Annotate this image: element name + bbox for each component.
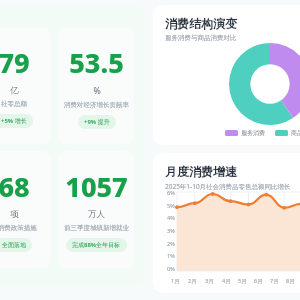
staticText: 服务消费与商品消费对比 <box>165 34 237 42</box>
staticText: 3% <box>167 227 175 234</box>
button[interactable]: 1057 <box>58 151 134 268</box>
staticText: 3月 <box>205 277 214 285</box>
staticText: 商品消费 <box>291 129 300 137</box>
staticText: 6月 <box>254 277 263 285</box>
button[interactable]: 53.5 <box>58 28 134 144</box>
staticText: 6% <box>167 189 175 196</box>
staticText: 2% <box>167 240 175 247</box>
staticText: 8月 <box>286 277 295 285</box>
staticText: 完成88%全年目标 <box>72 241 121 249</box>
staticText: 消费对经济增长贡献率 <box>64 101 129 109</box>
staticText: 4月 <box>222 277 231 285</box>
staticText: 项 <box>10 209 19 220</box>
staticText: 79 <box>0 44 30 81</box>
staticText: 社零总额 <box>1 100 27 108</box>
staticText: 53.5 <box>69 44 124 81</box>
staticText: 7月 <box>270 277 279 285</box>
button[interactable]: 服务消费 <box>225 129 265 137</box>
staticText: 亿 <box>10 85 19 96</box>
staticText: 全面落地 <box>2 241 26 249</box>
button[interactable]: 68 <box>0 151 51 268</box>
staticText: 68 <box>0 168 30 205</box>
staticText: 5月 <box>238 277 247 285</box>
staticText: 4% <box>167 214 175 221</box>
staticText: 2月 <box>188 277 197 285</box>
staticText: 1057 <box>65 168 128 205</box>
button[interactable]: 商品消费 <box>275 129 300 137</box>
staticText: +9% 提升 <box>84 118 110 126</box>
staticText: % <box>93 85 101 97</box>
staticText: 促消费政策措施 <box>0 224 37 232</box>
staticText: 1% <box>167 252 175 259</box>
staticText: 5% <box>167 202 175 209</box>
staticText: 前三季度城镇新增就业 <box>64 224 129 232</box>
staticText: 万人 <box>88 209 105 220</box>
staticText: 1月 <box>171 277 180 285</box>
staticText: 月度消费增速 <box>165 164 237 179</box>
staticText: 消费结构演变 <box>165 16 237 31</box>
staticText: 服务消费 <box>241 129 265 137</box>
staticText: +5% 增长 <box>1 117 27 125</box>
staticText: 0% <box>167 265 175 272</box>
staticText: 2025年1-10月社会消费品零售总额同比增长 <box>165 182 291 191</box>
button[interactable]: 79 <box>0 28 51 144</box>
